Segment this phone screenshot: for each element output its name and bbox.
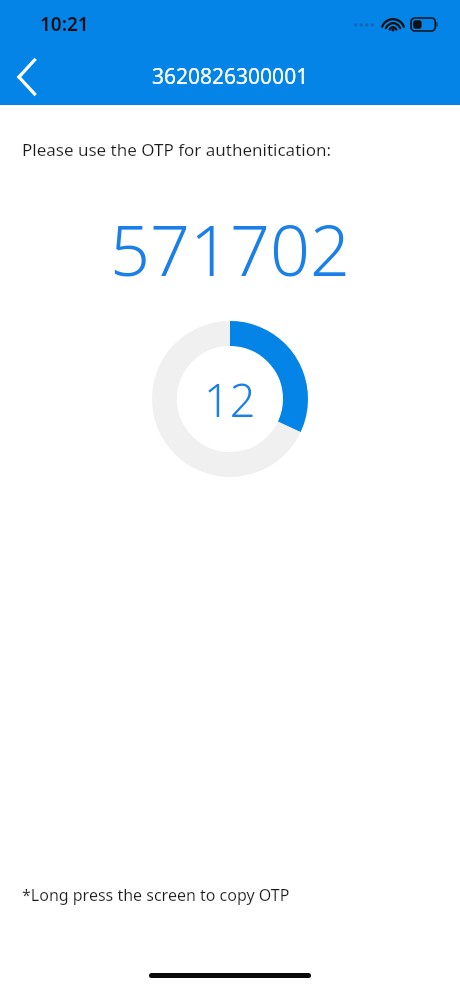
- staticText: 10:21: [40, 11, 89, 37]
- staticText: *Long press the screen to copy OTP: [22, 884, 290, 906]
- staticText: Please use the OTP for authenitication:: [22, 138, 332, 161]
- staticText: 12: [204, 369, 256, 430]
- staticText: 3620826300001: [152, 62, 309, 91]
- staticText: 571702: [0, 201, 460, 296]
- button[interactable]: Back: [0, 50, 54, 104]
